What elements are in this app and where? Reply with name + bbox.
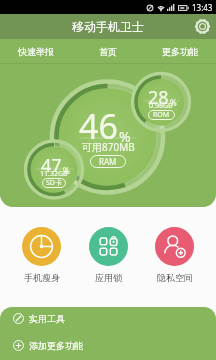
staticText: % xyxy=(119,127,131,146)
staticText: 应用锁 xyxy=(95,272,122,283)
staticText: 手机瘦身 xyxy=(24,272,60,283)
staticText: 快速举报 xyxy=(18,46,54,57)
button[interactable]: 隐私空间 xyxy=(149,227,200,283)
staticText: SD卡 xyxy=(46,178,62,188)
staticText: 46 xyxy=(79,103,118,149)
staticText: 添加更多功能 xyxy=(29,340,83,351)
button[interactable]: 首页 xyxy=(72,39,144,63)
staticText: 可用870MB xyxy=(82,140,135,154)
staticText: 13:43 xyxy=(192,2,213,13)
staticText: 更多功能 xyxy=(162,46,198,57)
staticText: % xyxy=(170,97,177,108)
staticText: 28 xyxy=(148,85,169,110)
button[interactable]: 更多功能 xyxy=(144,39,216,63)
button[interactable]: 实用工具 xyxy=(0,312,216,325)
button[interactable]: 应用锁 xyxy=(83,227,134,283)
button[interactable]: 快速举报 xyxy=(0,39,72,63)
staticText: 实用工具 xyxy=(29,313,65,324)
staticText: ROM xyxy=(153,110,170,120)
staticText: % xyxy=(63,165,70,176)
button[interactable]: 手机瘦身 xyxy=(16,227,67,283)
staticText: 移动手机卫士 xyxy=(72,19,144,34)
staticText: 11.32GB xyxy=(40,169,68,179)
staticText: RAM xyxy=(99,156,117,167)
staticText: 首页 xyxy=(99,46,117,57)
staticText: 47 xyxy=(41,153,62,178)
button[interactable]: 添加更多功能 xyxy=(0,339,216,352)
staticText: 0.98GB xyxy=(149,101,173,111)
button[interactable]: Settings xyxy=(193,17,212,36)
staticText: 隐私空间 xyxy=(157,272,193,283)
